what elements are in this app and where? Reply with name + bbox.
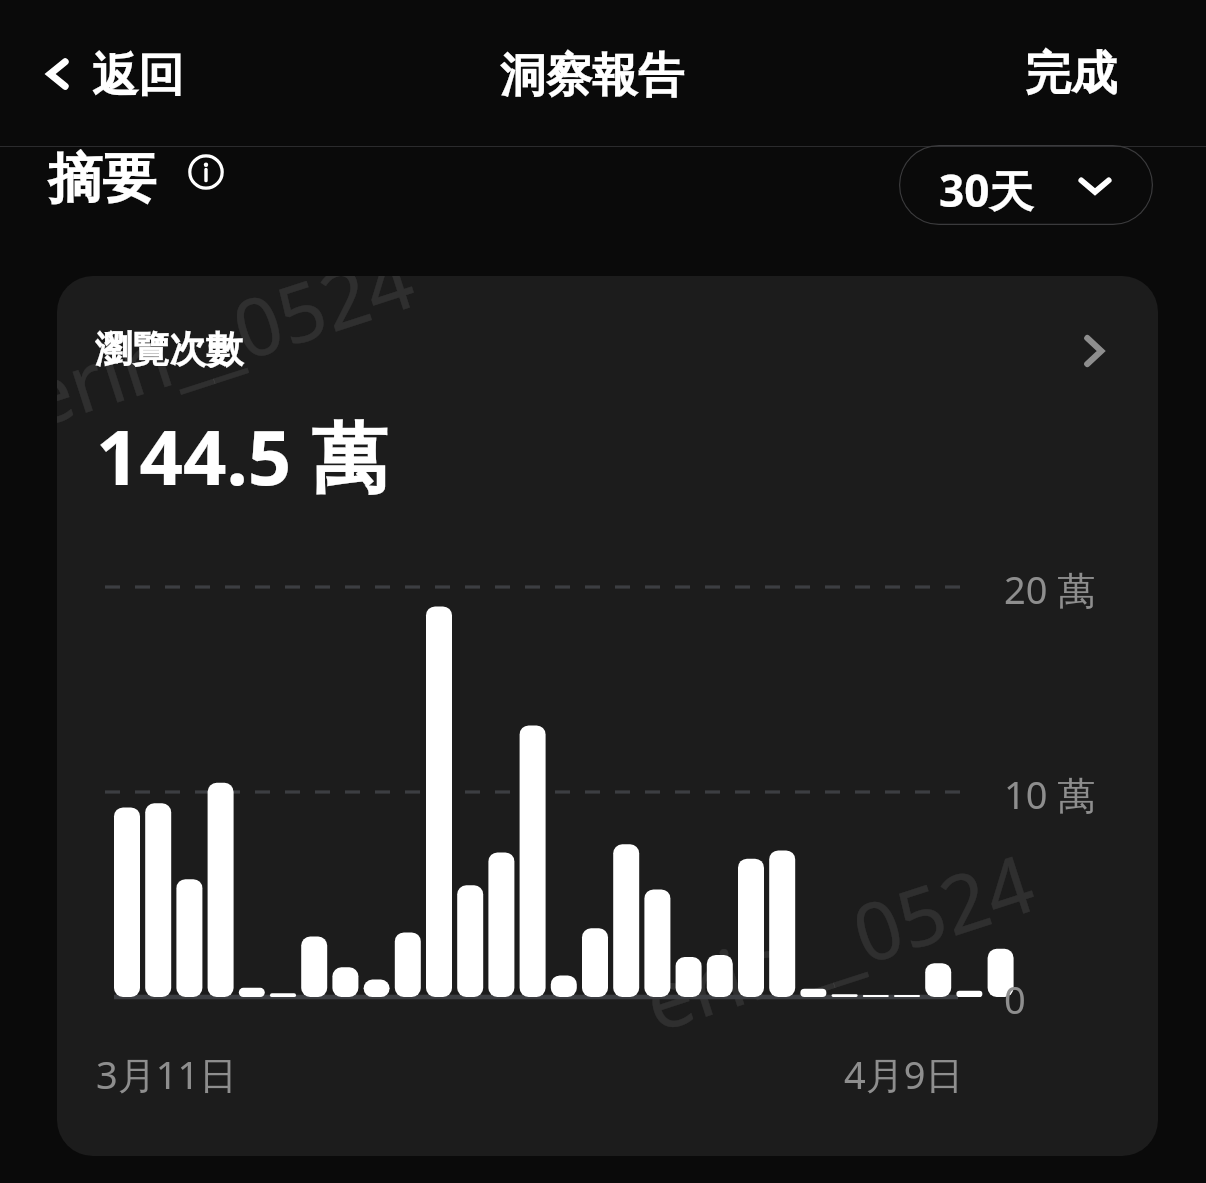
button[interactable]: 30天 [899,145,1153,225]
staticText: 返回 [92,47,184,105]
staticText: 30天 [939,160,1034,220]
button[interactable]: 完成 [1025,38,1175,110]
staticText: 0 [1004,973,1026,1025]
staticText: 4月9日 [844,1048,964,1100]
button[interactable]: 返回 [30,38,240,110]
staticText: 20 萬 [1004,563,1096,615]
button[interactable]: erin__0524 [57,276,1158,1156]
staticText: 摘要 [48,145,156,213]
staticText: 瀏覽次數 [95,326,243,373]
staticText: 完成 [1025,45,1117,103]
staticText: erin__0524 [630,826,1047,1055]
staticText: 10 萬 [1004,768,1096,820]
button[interactable]: 查看瀏覽次數詳情 [1063,320,1125,382]
staticText: 3月11日 [96,1048,238,1100]
button[interactable]: 資訊 [184,150,228,194]
staticText: erin__0524 [57,276,427,451]
staticText: 洞察報告 [500,47,684,105]
staticText: 144.5 萬 [96,404,388,508]
